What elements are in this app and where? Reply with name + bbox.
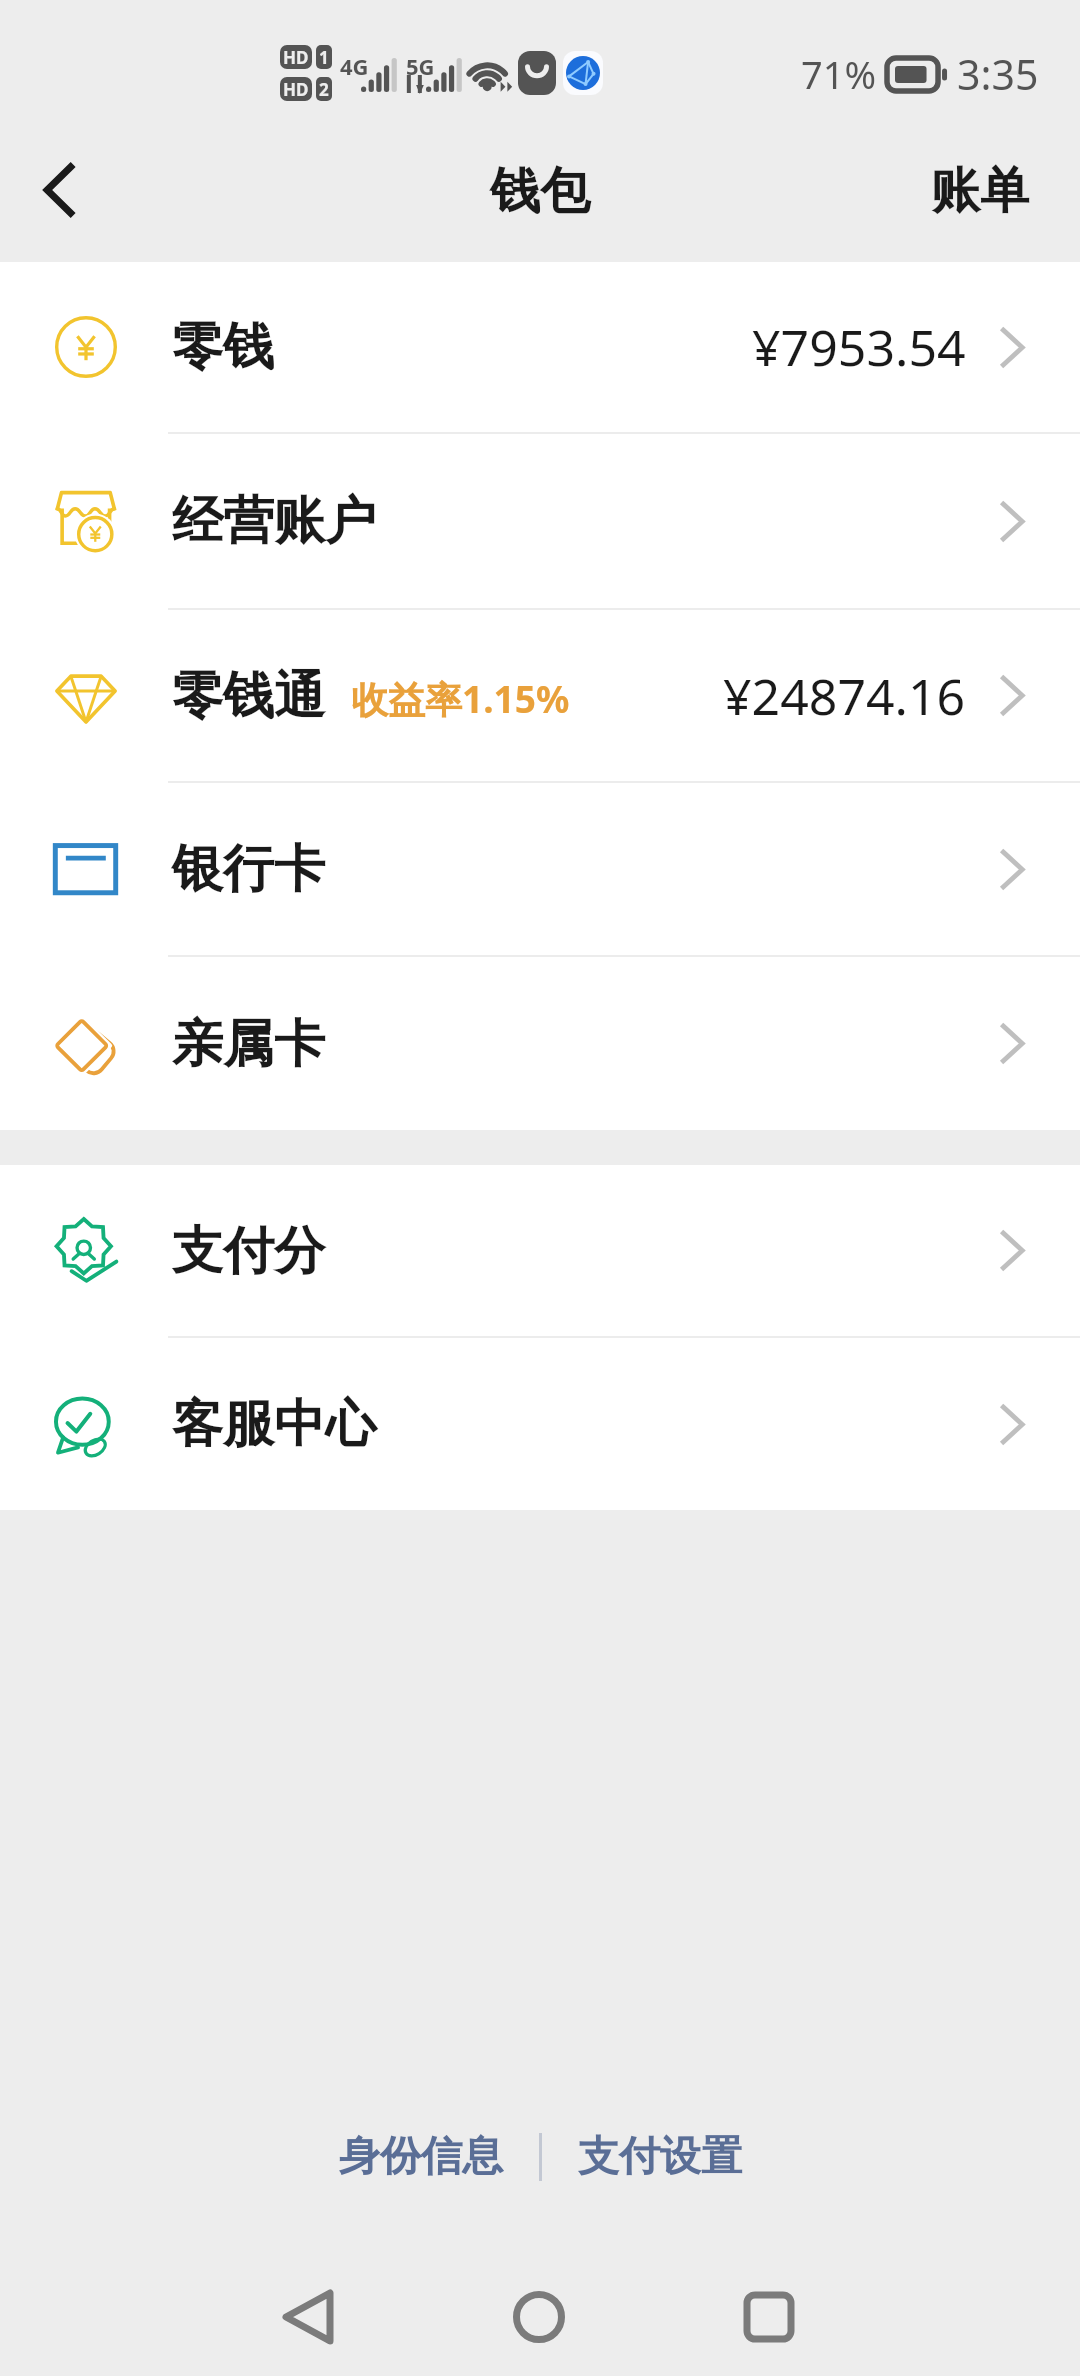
staticText: 5G bbox=[406, 51, 435, 75]
staticText: 支付分 bbox=[172, 1219, 325, 1283]
staticText: 收益率1.15% bbox=[351, 673, 570, 724]
button[interactable]: Back bbox=[14, 146, 102, 234]
staticText: 身份信息 bbox=[339, 2131, 503, 2183]
button[interactable]: 支付设置 bbox=[560, 2111, 760, 2203]
button[interactable]: Recent apps bbox=[724, 2272, 814, 2362]
button[interactable]: 账单 bbox=[880, 134, 1080, 248]
staticText: 亲属卡 bbox=[172, 1012, 325, 1076]
staticText: ¥7953.54 bbox=[752, 313, 966, 381]
staticText: 经营账户 bbox=[172, 489, 376, 553]
staticText: 3:35 bbox=[957, 46, 1039, 102]
staticText: 支付设置 bbox=[578, 2131, 742, 2183]
button[interactable]: Home bbox=[494, 2272, 584, 2362]
staticText: 1 bbox=[319, 46, 329, 69]
staticText: ¥24874.16 bbox=[723, 662, 966, 730]
staticText: 银行卡 bbox=[172, 837, 325, 901]
staticText: 零钱 bbox=[172, 315, 274, 379]
button[interactable]: 经营账户 bbox=[0, 434, 1080, 610]
staticText: 2 bbox=[319, 78, 329, 101]
staticText: 账单 bbox=[931, 160, 1029, 222]
staticText: 钱包 bbox=[490, 160, 590, 223]
button[interactable]: 亲属卡 bbox=[0, 957, 1080, 1130]
button[interactable]: 银行卡 bbox=[0, 783, 1080, 957]
button[interactable]: 身份信息 bbox=[321, 2111, 521, 2203]
staticText: 客服中心 bbox=[172, 1392, 376, 1456]
staticText: 71% bbox=[801, 48, 877, 100]
button[interactable]: 零钱 bbox=[0, 262, 1080, 434]
staticText: 4G bbox=[340, 51, 369, 75]
button[interactable]: 支付分 bbox=[0, 1165, 1080, 1338]
button[interactable]: 零钱通 bbox=[0, 610, 1080, 783]
staticText: HD bbox=[283, 78, 309, 101]
staticText: HD bbox=[283, 46, 309, 69]
button[interactable]: Back bbox=[263, 2272, 353, 2362]
button[interactable]: 客服中心 bbox=[0, 1338, 1080, 1510]
staticText: 零钱通 bbox=[172, 664, 325, 728]
